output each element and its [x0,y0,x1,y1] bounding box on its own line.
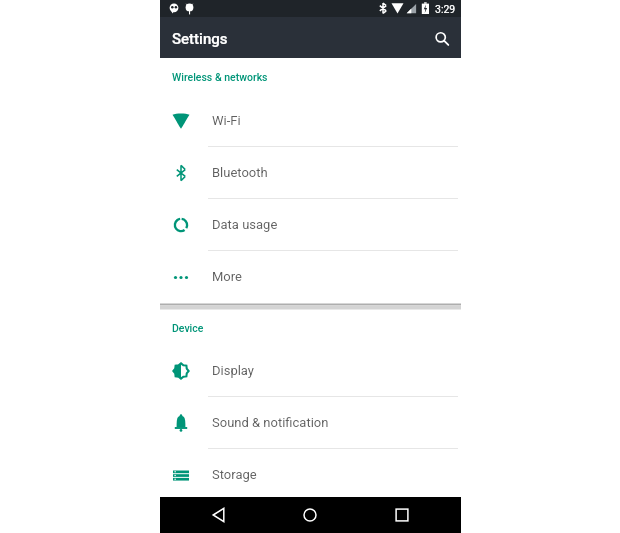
staticText: Settings [172,30,228,48]
button[interactable]: Back [173,497,264,533]
staticText: Device [172,322,204,334]
staticText: Storage [212,467,257,482]
staticText: Wi-Fi [212,113,241,128]
staticText: 3:29 [435,3,456,15]
button[interactable]: Display [160,345,461,397]
button[interactable]: Search [428,24,456,52]
staticText: Wireless & networks [172,71,268,83]
button[interactable]: Sound & notification [160,397,461,449]
staticText: More [212,269,242,284]
button[interactable]: More [160,251,461,303]
button[interactable]: Home [264,497,356,533]
staticText: Bluetooth [212,165,268,180]
staticText: Sound & notification [212,415,329,430]
staticText: Data usage [212,217,278,232]
staticText: Display [212,363,254,378]
button[interactable]: Storage [160,449,461,501]
button[interactable]: Bluetooth [160,147,461,199]
button[interactable]: Data usage [160,199,461,251]
button[interactable]: Recents [356,497,448,533]
button[interactable]: Wi-Fi [160,95,461,147]
